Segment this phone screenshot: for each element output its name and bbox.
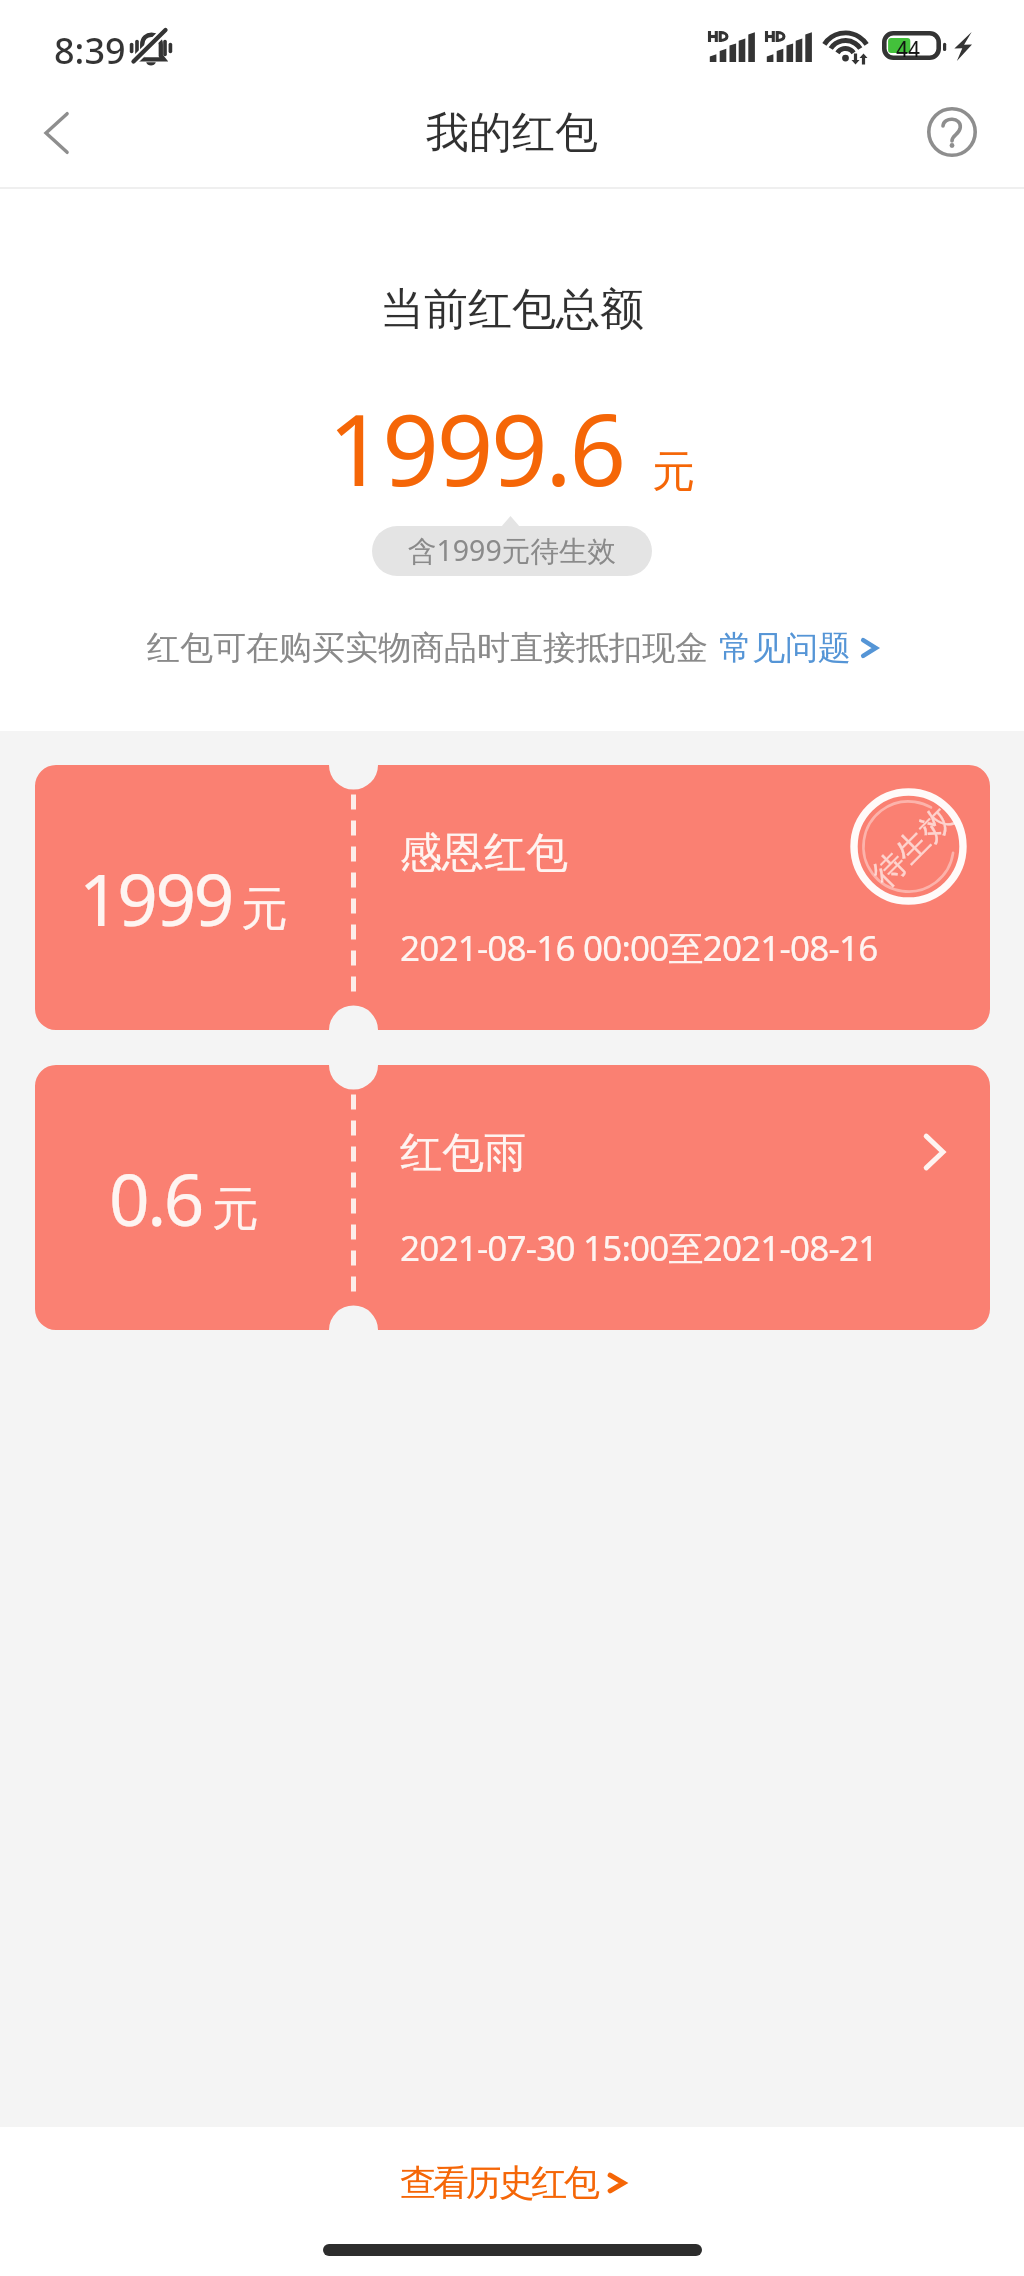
staticText: 我的红包 bbox=[426, 106, 598, 160]
staticText: 查看历史红包 bbox=[400, 2160, 597, 2205]
staticText: 含1999元待生效 bbox=[408, 531, 616, 570]
button[interactable]: 查看历史红包 bbox=[400, 2160, 626, 2205]
staticText: 当前红包总额 bbox=[380, 282, 644, 337]
staticText: 元 bbox=[212, 1180, 259, 1239]
button[interactable]: 1999 bbox=[35, 765, 990, 1030]
staticText: 待生效 bbox=[864, 798, 961, 894]
button[interactable]: 常见问题 bbox=[719, 627, 879, 669]
staticText: 元 bbox=[652, 445, 695, 499]
staticText: 红包雨 bbox=[400, 1127, 526, 1180]
staticText: 0.6 bbox=[109, 1150, 203, 1247]
button[interactable]: Back bbox=[7, 83, 107, 183]
staticText: 常见问题 bbox=[719, 627, 851, 669]
staticText: 2021-08-16 00:00至2021-08-16 bbox=[400, 924, 878, 972]
staticText: 感恩红包 bbox=[400, 827, 568, 880]
staticText: 1999.6 bbox=[328, 380, 624, 515]
staticText: 2021-07-30 15:00至2021-08-21 bbox=[400, 1224, 878, 1272]
staticText: 8:39 bbox=[54, 26, 126, 75]
button[interactable]: 0.6 bbox=[35, 1065, 990, 1330]
staticText: 元 bbox=[241, 880, 288, 939]
staticText: 红包可在购买实物商品时直接抵扣现金 bbox=[147, 627, 708, 669]
button[interactable]: Help bbox=[904, 84, 1000, 180]
staticText: 1999 bbox=[79, 850, 232, 947]
staticText: 44 bbox=[896, 35, 921, 64]
